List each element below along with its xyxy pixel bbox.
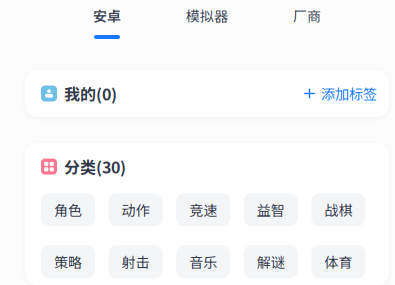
staticText: 动作 [122,199,150,220]
staticText: 益智 [257,199,285,220]
staticText: 音乐 [189,251,217,272]
staticText: 分类(30) [64,155,126,178]
button[interactable]: 模拟器 [157,0,257,39]
staticText: 射击 [122,251,150,272]
button[interactable]: 射击 [109,245,163,278]
button[interactable]: 益智 [244,193,298,226]
button[interactable]: 解谜 [244,245,298,278]
button[interactable]: 战棋 [311,193,365,226]
staticText: 策略 [54,251,82,272]
staticText: 战棋 [324,199,352,220]
staticText: 解谜 [257,251,285,272]
staticText: 竞速 [189,199,217,220]
staticText: 我的(0) [64,82,117,105]
button[interactable]: 动作 [109,193,163,226]
button[interactable]: 策略 [41,245,95,278]
staticText: 厂商 [293,5,321,26]
button[interactable]: 体育 [311,245,365,278]
button[interactable]: 角色 [41,193,95,226]
button[interactable]: 竞速 [176,193,230,226]
staticText: 添加标签 [321,83,377,104]
button[interactable]: 安卓 [57,0,157,39]
staticText: 角色 [54,199,82,220]
button[interactable]: 厂商 [257,0,357,39]
staticText: 安卓 [93,5,121,26]
staticText: 体育 [324,251,352,272]
button[interactable]: 添加标签 [304,83,377,104]
button[interactable]: 音乐 [176,245,230,278]
staticText: 模拟器 [186,5,228,26]
